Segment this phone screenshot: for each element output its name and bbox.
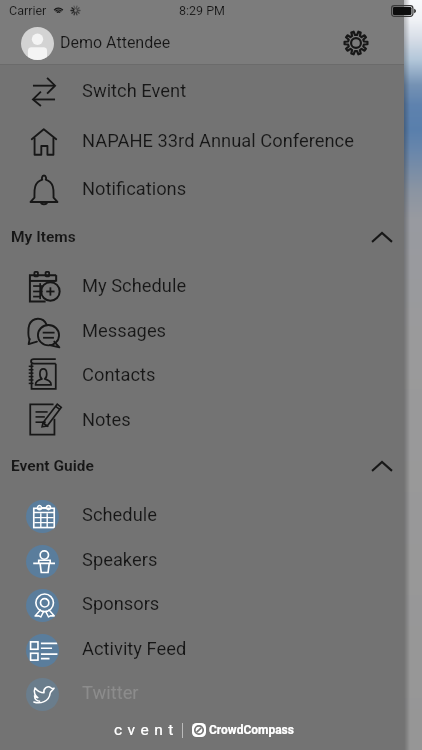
button[interactable]: Sponsors	[0, 581, 404, 625]
staticText: Contacts	[82, 364, 156, 385]
button[interactable]: Demo Attendee	[0, 21, 404, 64]
staticText: Carrier	[9, 3, 47, 18]
staticText: NAPAHE 33rd Annual Conference	[82, 130, 354, 151]
staticText: Switch Event	[82, 80, 187, 101]
button[interactable]: My Items	[0, 215, 404, 259]
staticText: Messages	[82, 320, 167, 341]
button[interactable]: Twitter	[0, 670, 404, 714]
button[interactable]: Messages	[0, 308, 404, 352]
staticText: CrowdCompass	[209, 723, 294, 737]
staticText: Twitter	[82, 682, 139, 703]
button[interactable]: Activity Feed	[0, 626, 404, 670]
staticText: Notes	[82, 409, 131, 430]
staticText: My Schedule	[82, 275, 187, 296]
staticText: Speakers	[82, 549, 158, 570]
button[interactable]: NAPAHE 33rd Annual Conference	[0, 118, 404, 162]
button[interactable]: Event Guide	[0, 444, 404, 488]
button[interactable]: Schedule	[0, 492, 404, 536]
button[interactable]: Notifications	[0, 166, 404, 210]
button[interactable]: Speakers	[0, 537, 404, 581]
button[interactable]: Settings	[334, 21, 378, 64]
staticText: Notifications	[82, 178, 187, 199]
staticText: Sponsors	[82, 593, 160, 614]
staticText: Event Guide	[11, 457, 94, 475]
button[interactable]: Notes	[0, 397, 404, 441]
button[interactable]: My Schedule	[0, 263, 404, 307]
button[interactable]: Switch Event	[0, 68, 404, 112]
button[interactable]: cvent	[114, 721, 294, 745]
staticText: cvent	[114, 721, 179, 739]
staticText: My Items	[11, 228, 76, 246]
button[interactable]: Contacts	[0, 352, 404, 396]
staticText: Demo Attendee	[60, 33, 171, 52]
staticText: Activity Feed	[82, 638, 187, 659]
staticText: Schedule	[82, 504, 157, 525]
staticText: 8:29 PM	[179, 3, 226, 18]
